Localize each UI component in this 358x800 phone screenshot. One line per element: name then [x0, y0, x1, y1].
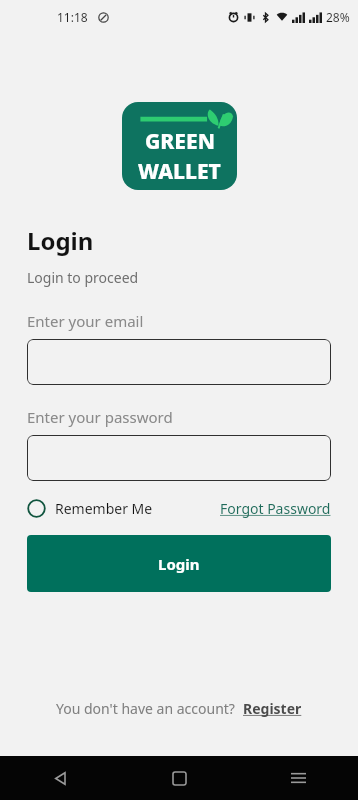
- button[interactable]: Recent apps: [239, 756, 358, 800]
- staticText: Enter your email: [27, 311, 144, 331]
- button[interactable]: Login: [27, 535, 331, 592]
- staticText: 28%: [326, 9, 350, 25]
- button[interactable]: Remember Me: [27, 499, 153, 518]
- button[interactable]: Home: [120, 756, 239, 800]
- staticText: 11:18: [57, 9, 88, 25]
- staticText: Login: [158, 554, 200, 574]
- staticText: Enter your password: [27, 407, 173, 427]
- staticText: WALLET: [138, 157, 221, 186]
- button[interactable]: [27, 339, 331, 385]
- button[interactable]: Forgot Password: [220, 499, 331, 518]
- button[interactable]: Register: [243, 699, 302, 718]
- staticText: Remember Me: [55, 499, 153, 518]
- button[interactable]: [27, 435, 331, 481]
- staticText: Register: [243, 699, 302, 718]
- staticText: GREEN: [145, 127, 215, 156]
- staticText: Login to proceed: [27, 268, 139, 287]
- staticText: Login: [27, 224, 94, 257]
- staticText: You don't have an account?: [56, 699, 235, 718]
- staticText: Forgot Password: [220, 499, 331, 518]
- button[interactable]: Back: [0, 756, 120, 800]
